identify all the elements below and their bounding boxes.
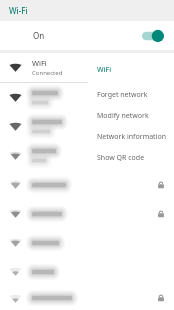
button[interactable] [0, 112, 174, 141]
button[interactable]: Forget network [88, 84, 174, 105]
button[interactable] [0, 257, 174, 286]
button[interactable]: Toggle Wi-Fi [142, 29, 164, 43]
staticText: On [33, 30, 45, 41]
button[interactable] [0, 286, 174, 310]
staticText: Network information [97, 132, 167, 142]
staticText: Connected [32, 69, 63, 77]
button[interactable]: Network information [88, 126, 174, 147]
button[interactable]: Modify network [88, 105, 174, 126]
staticText: WiFi [32, 58, 47, 68]
staticText: WiFi [97, 65, 112, 75]
staticText: Show QR code [97, 153, 145, 163]
button[interactable]: On [0, 21, 174, 50]
staticText: Modify network [97, 111, 149, 121]
button[interactable]: WiFi [0, 53, 174, 82]
button[interactable] [0, 83, 174, 112]
staticText: Forget network [97, 90, 148, 100]
button[interactable] [0, 141, 174, 170]
staticText: Wi-Fi [9, 5, 28, 16]
button[interactable] [0, 170, 174, 199]
button[interactable] [0, 199, 174, 228]
button[interactable]: Show QR code [88, 147, 174, 168]
button[interactable] [0, 228, 174, 257]
